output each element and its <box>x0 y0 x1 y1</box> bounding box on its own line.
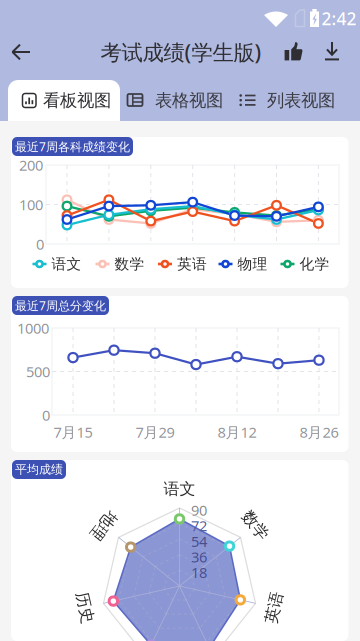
staticText: 36 <box>191 547 207 567</box>
staticText: 语文 <box>51 255 81 273</box>
staticText: 90 <box>191 500 207 520</box>
staticText: 54 <box>191 531 207 551</box>
button[interactable]: Like <box>281 29 311 75</box>
staticText: 200 <box>19 155 43 175</box>
staticText: 数学 <box>239 516 271 535</box>
button[interactable]: Back <box>5 29 51 75</box>
staticText: 看板视图 <box>43 90 111 111</box>
staticText: 18 <box>191 563 207 582</box>
staticText: 数学 <box>114 255 144 273</box>
staticText: 物理 <box>237 255 267 273</box>
staticText: 最近7周总分变化 <box>15 297 106 313</box>
staticText: 72 <box>191 516 207 535</box>
staticText: 语文 <box>163 479 195 499</box>
staticText: 7月29 <box>135 422 174 442</box>
staticText: 8月26 <box>299 422 338 442</box>
staticText: 8月12 <box>217 422 256 442</box>
staticText: 英语 <box>177 255 207 273</box>
staticText: 7月15 <box>53 422 92 442</box>
staticText: 地理 <box>88 516 120 535</box>
staticText: 2:42 <box>321 7 356 30</box>
staticText: 1000 <box>17 318 49 338</box>
staticText: 500 <box>26 362 50 381</box>
staticText: 考试成绩(学生版) <box>100 38 261 66</box>
staticText: 历史 <box>69 598 101 617</box>
staticText: 0 <box>36 234 44 254</box>
button[interactable]: 看板视图 <box>8 80 120 121</box>
staticText: 平均成绩 <box>15 462 63 477</box>
button[interactable]: 表格视图 <box>121 80 233 121</box>
staticText: 列表视图 <box>267 90 335 111</box>
staticText: 100 <box>19 195 43 214</box>
staticText: 0 <box>42 405 50 425</box>
staticText: 化学 <box>299 255 329 273</box>
staticText: 英语 <box>258 598 290 617</box>
button[interactable]: 列表视图 <box>233 80 345 121</box>
staticText: 最近7周各科成绩变化 <box>15 138 130 154</box>
staticText: 表格视图 <box>155 90 223 111</box>
button[interactable]: Download <box>317 29 347 75</box>
